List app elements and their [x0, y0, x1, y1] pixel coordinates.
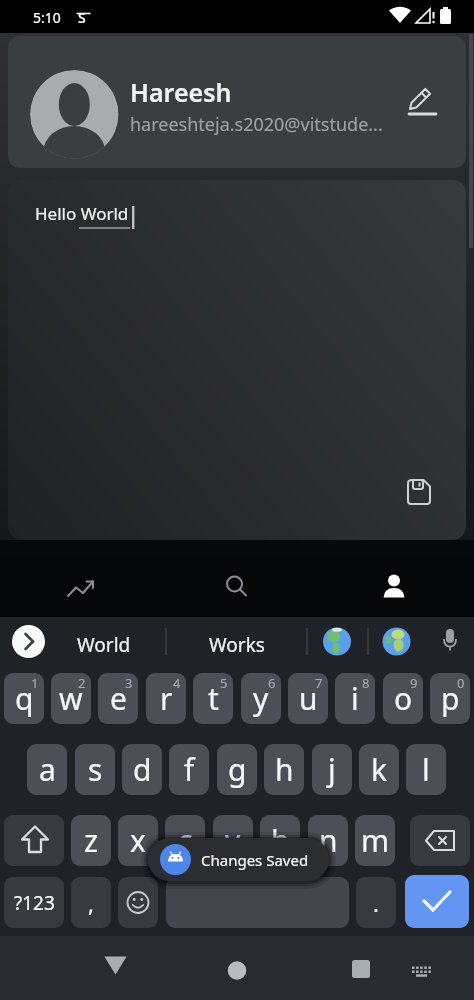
- button[interactable]: e: [98, 673, 138, 724]
- staticText: 8: [362, 674, 370, 692]
- staticText: Hareesh: [130, 75, 232, 109]
- staticText: 2: [78, 674, 86, 692]
- staticText: n: [319, 820, 338, 861]
- staticText: 9: [410, 674, 418, 692]
- staticText: w: [59, 678, 83, 719]
- staticText: Works: [209, 632, 265, 658]
- staticText: 0: [457, 674, 465, 692]
- staticText: l: [422, 749, 430, 790]
- button[interactable]: [430, 620, 470, 670]
- button[interactable]: o: [383, 673, 423, 724]
- button[interactable]: r: [146, 673, 186, 724]
- button[interactable]: [316, 558, 474, 617]
- staticText: a: [39, 749, 56, 790]
- button[interactable]: x: [118, 815, 158, 866]
- button[interactable]: [89, 936, 137, 1000]
- button[interactable]: World: [56, 617, 152, 673]
- button[interactable]: w: [51, 673, 91, 724]
- staticText: i: [351, 678, 359, 719]
- button[interactable]: g: [217, 744, 257, 795]
- staticText: hareeshteja.s2020@vitstude...: [130, 112, 383, 137]
- button[interactable]: s: [75, 744, 115, 795]
- staticText: 1: [31, 674, 39, 692]
- staticText: t: [208, 678, 219, 719]
- staticText: 5:10: [33, 8, 61, 27]
- button[interactable]: l: [406, 744, 446, 795]
- staticText: d: [133, 749, 152, 790]
- button[interactable]: ,: [71, 877, 111, 928]
- button[interactable]: .: [356, 877, 396, 928]
- button[interactable]: b: [260, 815, 300, 866]
- button[interactable]: [337, 936, 385, 1000]
- button[interactable]: k: [359, 744, 399, 795]
- staticText: 5: [220, 674, 228, 692]
- staticText: b: [271, 820, 290, 861]
- staticText: 6: [268, 674, 276, 692]
- button[interactable]: i: [335, 673, 375, 724]
- button[interactable]: [166, 877, 349, 928]
- button[interactable]: c: [165, 815, 205, 866]
- staticText: o: [394, 678, 413, 719]
- button[interactable]: [4, 815, 64, 866]
- button[interactable]: q: [4, 673, 44, 724]
- staticText: Changes Saved: [201, 850, 309, 870]
- staticText: c: [178, 820, 193, 861]
- staticText: e: [110, 678, 127, 719]
- staticText: j: [328, 749, 336, 790]
- staticText: 3: [125, 674, 133, 692]
- staticText: .: [373, 888, 379, 918]
- button[interactable]: j: [312, 744, 352, 795]
- staticText: z: [84, 820, 99, 861]
- staticText: k: [371, 749, 388, 790]
- button[interactable]: v: [213, 815, 253, 866]
- staticText: 7: [315, 674, 323, 692]
- staticText: u: [299, 678, 318, 719]
- staticText: ,: [88, 888, 94, 918]
- staticText: h: [275, 749, 294, 790]
- staticText: v: [225, 820, 241, 861]
- button[interactable]: [315, 620, 359, 670]
- button[interactable]: y: [241, 673, 281, 724]
- staticText: Hello World: [35, 202, 129, 225]
- staticText: S: [78, 8, 86, 27]
- staticText: m: [361, 820, 390, 861]
- button[interactable]: f: [169, 744, 209, 795]
- button[interactable]: d: [122, 744, 162, 795]
- button[interactable]: n: [308, 815, 348, 866]
- button[interactable]: m: [355, 815, 395, 866]
- staticText: q: [15, 678, 34, 719]
- button[interactable]: ?123: [4, 877, 64, 928]
- button[interactable]: [404, 936, 444, 1000]
- button[interactable]: Hareesh: [8, 36, 466, 168]
- button[interactable]: a: [27, 744, 67, 795]
- staticText: r: [160, 678, 173, 719]
- button[interactable]: z: [71, 815, 111, 866]
- staticText: p: [441, 678, 460, 719]
- button[interactable]: Hello World: [8, 180, 466, 540]
- button[interactable]: u: [288, 673, 328, 724]
- button[interactable]: [403, 84, 439, 120]
- button[interactable]: [118, 877, 158, 928]
- button[interactable]: p: [430, 673, 470, 724]
- staticText: s: [88, 749, 103, 790]
- staticText: World: [77, 632, 131, 658]
- staticText: ?123: [14, 890, 55, 916]
- staticText: g: [228, 749, 247, 790]
- staticText: 4: [173, 674, 181, 692]
- staticText: f: [184, 749, 195, 790]
- button[interactable]: [405, 875, 469, 928]
- button[interactable]: [158, 558, 316, 617]
- staticText: y: [253, 678, 269, 719]
- button[interactable]: [0, 558, 158, 617]
- button[interactable]: [213, 936, 261, 1000]
- button[interactable]: [410, 815, 470, 866]
- button[interactable]: [12, 625, 45, 658]
- staticText: x: [130, 820, 146, 861]
- button[interactable]: t: [193, 673, 233, 724]
- button[interactable]: Works: [180, 617, 294, 673]
- button[interactable]: [374, 620, 418, 670]
- button[interactable]: [398, 470, 442, 514]
- button[interactable]: h: [264, 744, 304, 795]
